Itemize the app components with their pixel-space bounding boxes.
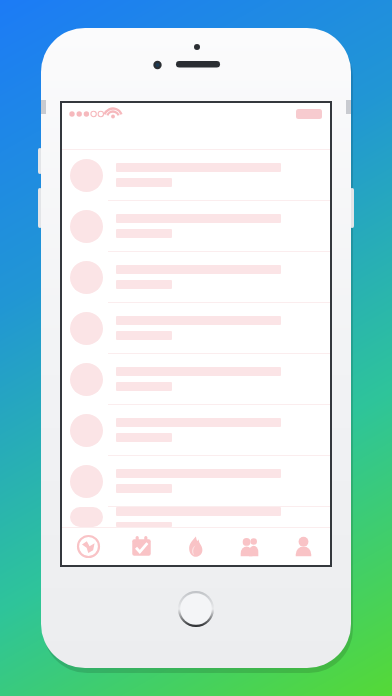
- button[interactable]: [62, 354, 330, 405]
- button[interactable]: [62, 405, 330, 456]
- button[interactable]: Trending: [168, 527, 222, 565]
- button[interactable]: [62, 150, 330, 201]
- button[interactable]: Explore: [62, 527, 115, 565]
- button[interactable]: Friends: [222, 527, 276, 565]
- button[interactable]: [62, 201, 330, 252]
- button[interactable]: [62, 507, 330, 527]
- button[interactable]: [62, 303, 330, 354]
- button[interactable]: Profile: [276, 527, 330, 565]
- button[interactable]: Events: [115, 527, 168, 565]
- button[interactable]: [62, 252, 330, 303]
- button[interactable]: [62, 456, 330, 507]
- other: Home: [178, 591, 214, 627]
